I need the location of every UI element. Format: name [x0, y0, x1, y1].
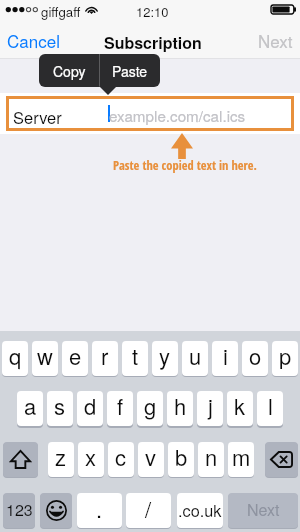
- button[interactable]: Paste: [100, 54, 160, 87]
- staticText: r: [101, 341, 109, 372]
- button[interactable]: Next: [228, 493, 298, 528]
- staticText: n: [205, 442, 218, 473]
- button[interactable]: g: [137, 391, 163, 426]
- button[interactable]: s: [47, 391, 73, 426]
- button[interactable]: e: [62, 341, 88, 376]
- staticText: y: [159, 341, 171, 372]
- button[interactable]: Emoji: [40, 493, 72, 528]
- button[interactable]: m: [228, 442, 254, 477]
- staticText: f: [117, 391, 124, 422]
- staticText: 123: [6, 498, 33, 521]
- staticText: i: [223, 341, 228, 372]
- staticText: v: [145, 442, 157, 473]
- staticText: Copy: [53, 61, 86, 81]
- staticText: .: [96, 493, 103, 525]
- button[interactable]: x: [78, 442, 104, 477]
- staticText: m: [232, 442, 251, 473]
- staticText: b: [175, 442, 188, 473]
- button[interactable]: q: [2, 341, 28, 376]
- button[interactable]: [6, 96, 294, 131]
- button[interactable]: y: [152, 341, 178, 376]
- button[interactable]: v: [138, 442, 164, 477]
- button[interactable]: r: [92, 341, 118, 376]
- staticText: j: [208, 391, 213, 422]
- staticText: w: [37, 341, 53, 372]
- button[interactable]: a: [17, 391, 43, 426]
- button[interactable]: k: [227, 391, 253, 426]
- button[interactable]: h: [167, 391, 193, 426]
- staticText: Server: [13, 105, 62, 129]
- staticText: Subscription: [104, 31, 202, 54]
- staticText: u: [189, 341, 202, 372]
- button[interactable]: t: [122, 341, 148, 376]
- button[interactable]: l: [257, 391, 283, 426]
- staticText: s: [54, 391, 66, 422]
- staticText: Paste the copied text in here.: [113, 157, 257, 174]
- button[interactable]: u: [182, 341, 208, 376]
- button[interactable]: .co.uk: [177, 493, 223, 528]
- staticText: example.com/cal.ics: [109, 105, 246, 127]
- staticText: c: [115, 442, 127, 473]
- staticText: k: [234, 391, 246, 422]
- button[interactable]: j: [197, 391, 223, 426]
- staticText: e: [69, 341, 82, 372]
- staticText: a: [24, 391, 37, 422]
- staticText: Paste: [112, 61, 148, 81]
- staticText: 12:10: [136, 2, 169, 21]
- button[interactable]: c: [108, 442, 134, 477]
- button[interactable]: n: [198, 442, 224, 477]
- staticText: Cancel: [7, 28, 60, 52]
- staticText: q: [9, 341, 22, 372]
- button[interactable]: Copy: [39, 54, 99, 87]
- button[interactable]: Backspace: [265, 442, 298, 477]
- staticText: g: [144, 391, 157, 422]
- staticText: Next: [247, 498, 280, 521]
- staticText: z: [55, 442, 67, 473]
- button[interactable]: d: [77, 391, 103, 426]
- button[interactable]: /: [126, 493, 171, 528]
- button[interactable]: i: [212, 341, 238, 376]
- staticText: x: [85, 442, 97, 473]
- button[interactable]: b: [168, 442, 194, 477]
- staticText: giffgaff: [41, 2, 81, 21]
- button[interactable]: Shift: [3, 442, 38, 477]
- button[interactable]: f: [107, 391, 133, 426]
- button[interactable]: w: [32, 341, 58, 376]
- staticText: p: [279, 341, 292, 372]
- button[interactable]: z: [48, 442, 74, 477]
- button[interactable]: p: [272, 341, 298, 376]
- staticText: o: [249, 341, 262, 372]
- staticText: Next: [258, 28, 293, 52]
- button[interactable]: Cancel: [2, 26, 64, 54]
- button[interactable]: .: [77, 493, 122, 528]
- staticText: d: [84, 391, 97, 422]
- button[interactable]: o: [242, 341, 268, 376]
- button[interactable]: 123: [3, 493, 35, 528]
- staticText: t: [132, 341, 139, 372]
- staticText: .co.uk: [178, 498, 222, 521]
- staticText: /: [145, 493, 152, 525]
- staticText: h: [174, 391, 187, 422]
- button[interactable]: Next: [252, 26, 298, 54]
- staticText: l: [268, 391, 273, 422]
